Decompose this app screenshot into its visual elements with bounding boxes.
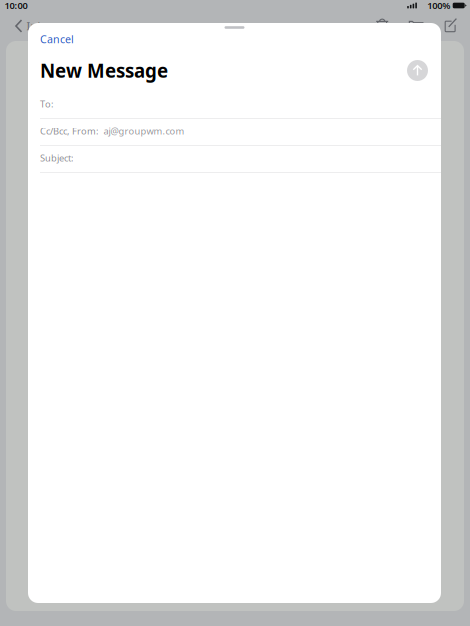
button[interactable]: Delete message [376,19,388,32]
staticText: aj@groupwm.com [103,125,184,137]
staticText: Subject: [40,152,74,164]
staticText: 10:00 [4,0,27,12]
staticText: To: [40,98,54,110]
button[interactable]: Cancel [28,29,80,49]
button[interactable]: Compose new message [445,19,457,37]
button[interactable]: Send [407,60,428,81]
staticText: Cancel [40,32,74,46]
staticText: Inbox [26,19,56,33]
button[interactable]: To: [28,92,441,119]
button[interactable]: Cc/Bcc, From: [28,119,441,146]
button[interactable]: Back to Inbox [15,19,56,33]
button[interactable]: Subject: [28,146,441,173]
staticText: New Message [40,58,168,83]
staticText: 100% [427,0,450,12]
staticText: Cc/Bcc, From: [40,125,99,137]
button[interactable]: Move to folder [409,19,424,32]
